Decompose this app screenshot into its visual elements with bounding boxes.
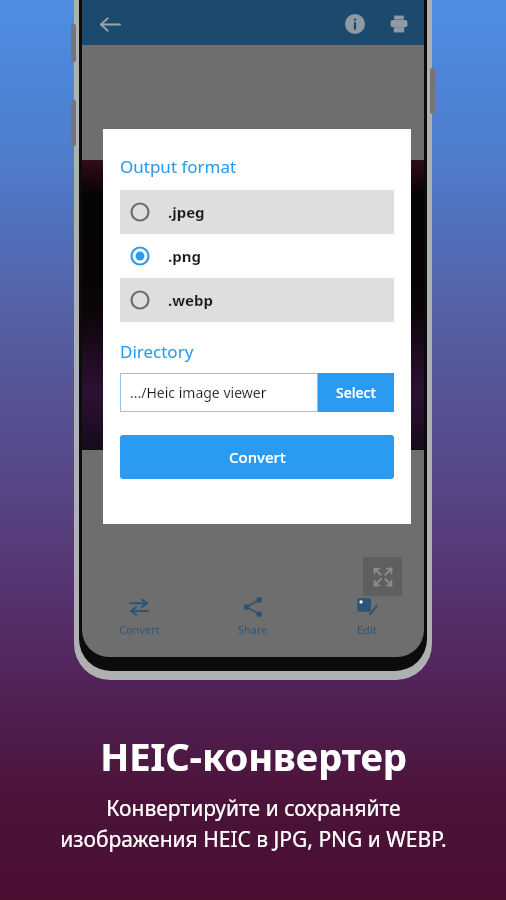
- staticText: Конвертируйте и сохраняйте изображения H…: [60, 794, 447, 853]
- button[interactable]: Select: [318, 373, 394, 412]
- button[interactable]: Back: [92, 7, 126, 41]
- button[interactable]: Info: [338, 7, 372, 41]
- staticText: .png: [168, 246, 201, 266]
- button[interactable]: .webp: [120, 278, 394, 322]
- button[interactable]: Fullscreen: [363, 557, 402, 596]
- staticText: Output format: [120, 155, 237, 178]
- button[interactable]: Convert: [82, 587, 196, 645]
- staticText: .../Heic image viewer: [130, 383, 267, 402]
- button[interactable]: .png: [120, 234, 394, 278]
- staticText: Edit: [357, 622, 377, 637]
- staticText: HEIC-конвертер: [100, 730, 407, 782]
- button[interactable]: Print: [382, 7, 416, 41]
- staticText: .webp: [168, 290, 213, 310]
- staticText: .jpeg: [168, 202, 205, 222]
- staticText: Directory: [120, 340, 194, 363]
- button[interactable]: Convert: [120, 435, 394, 479]
- staticText: Select: [336, 383, 376, 402]
- button[interactable]: .jpeg: [120, 190, 394, 234]
- button[interactable]: Edit: [310, 587, 424, 645]
- button[interactable]: Share: [196, 587, 310, 645]
- staticText: Share: [238, 622, 268, 637]
- staticText: Convert: [119, 622, 160, 637]
- staticText: Convert: [229, 447, 286, 467]
